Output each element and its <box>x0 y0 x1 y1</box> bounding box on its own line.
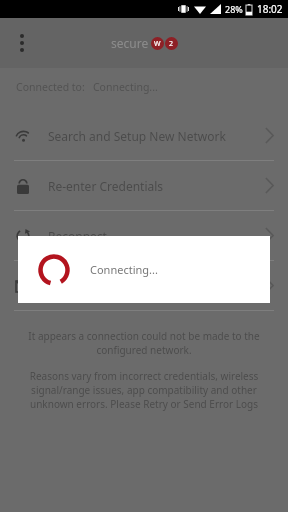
staticText: W <box>154 39 161 49</box>
button[interactable]: Re-enter Credentials <box>0 161 288 210</box>
button[interactable]: Search and Setup New Network <box>0 111 288 160</box>
staticText: secure <box>111 35 149 51</box>
staticText: 2 <box>169 39 174 49</box>
staticText: Connecting... <box>90 262 158 277</box>
staticText: 18:02 <box>257 2 283 16</box>
staticText: Search and Setup New Network <box>48 128 265 144</box>
staticText: Re-enter Credentials <box>48 178 265 194</box>
staticText: Reconnect <box>48 228 265 244</box>
button[interactable]: Reconnect <box>0 211 288 260</box>
button[interactable]: Send Error Logs <box>0 261 288 310</box>
staticText: Send Error Logs <box>48 278 265 294</box>
staticText: Reasons vary from incorrect credentials,… <box>16 369 272 411</box>
staticText: It appears a connection could not be mad… <box>22 329 266 357</box>
staticText: 28% <box>225 3 243 15</box>
staticText: Connected to: Connecting... <box>16 80 158 94</box>
button[interactable]: More options <box>6 27 38 59</box>
